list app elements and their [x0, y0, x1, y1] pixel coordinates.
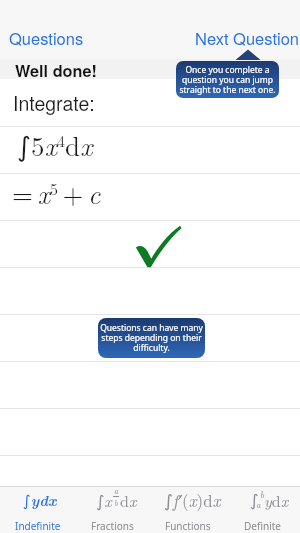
- button[interactable]: ∫: [225, 487, 300, 533]
- staticText: Next Question: [195, 26, 300, 50]
- button[interactable]: Questions: [0, 20, 94, 59]
- staticText: ∫5x4dx: [17, 126, 93, 164]
- staticText: ∫: [250, 491, 259, 510]
- staticText: Questions: [9, 26, 84, 50]
- button[interactable]: ∫f′(x)dx: [150, 487, 225, 533]
- staticText: Indefinite: [15, 519, 61, 533]
- staticText: a: [114, 485, 119, 496]
- staticText: b: [114, 497, 118, 508]
- staticText: ∫ydx: [23, 489, 57, 511]
- staticText: Well done!: [15, 59, 97, 79]
- button[interactable]: ∫x: [75, 487, 150, 533]
- staticText: ydx: [264, 489, 289, 512]
- staticText: ∫f′(x)dx: [164, 488, 221, 512]
- staticText: Fractions: [91, 519, 134, 533]
- staticText: Integrate:: [13, 89, 95, 117]
- staticText: dx: [120, 489, 137, 512]
- staticText: ∫x: [96, 489, 112, 512]
- staticText: a: [256, 498, 261, 511]
- staticText: Questions can have many steps depending …: [100, 322, 203, 354]
- staticText: = x5 + c: [12, 174, 101, 212]
- staticText: Once you complete a question you can jum…: [179, 64, 276, 96]
- staticText: b: [260, 488, 265, 501]
- button[interactable]: ∫ydx: [0, 487, 75, 533]
- button[interactable]: Next Question: [185, 20, 300, 59]
- staticText: Definite: [244, 519, 281, 533]
- staticText: Functions: [165, 519, 211, 533]
